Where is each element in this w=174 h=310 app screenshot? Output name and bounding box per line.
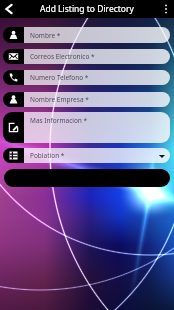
button[interactable] — [14, 148, 170, 163]
staticText: Nombre Empresa * — [30, 95, 89, 104]
button[interactable] — [14, 92, 170, 107]
button[interactable]: More options — [158, 0, 174, 18]
button[interactable]: Submit — [4, 169, 170, 187]
staticText: Nombre * — [30, 31, 61, 40]
staticText: Correos Electronico * — [30, 52, 95, 61]
staticText: Poblation * — [30, 151, 65, 160]
staticText: Mas Informacion * — [30, 116, 88, 125]
button[interactable] — [14, 27, 170, 43]
button[interactable]: Back — [0, 0, 20, 18]
button[interactable] — [14, 70, 170, 85]
staticText: Add Listing to Directory — [40, 3, 134, 15]
staticText: Numero Telefono * — [30, 73, 89, 82]
button[interactable] — [14, 49, 170, 64]
button[interactable] — [14, 112, 170, 143]
